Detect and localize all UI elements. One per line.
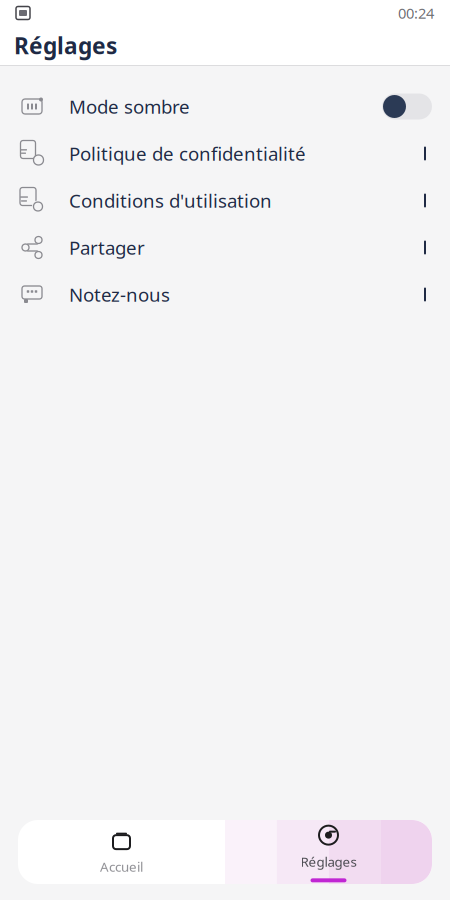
button[interactable]: Accueil — [18, 820, 225, 884]
staticText: Réglages — [300, 853, 356, 870]
button[interactable]: Mode sombre — [0, 83, 450, 130]
staticText: 00:24 — [398, 3, 434, 23]
staticText: Conditions d'utilisation — [69, 188, 272, 213]
button[interactable]: Politique de confidentialité — [0, 130, 450, 177]
staticText: Notez-nous — [69, 282, 170, 307]
staticText: Accueil — [100, 858, 143, 875]
staticText: Mode sombre — [69, 94, 190, 119]
button[interactable]: Partager — [0, 224, 450, 271]
staticText: Politique de confidentialité — [69, 141, 306, 166]
button[interactable]: Conditions d'utilisation — [0, 177, 450, 224]
button[interactable]: Notez-nous — [0, 271, 450, 318]
staticText: Réglages — [14, 30, 117, 60]
staticText: Partager — [69, 235, 145, 260]
button[interactable]: Réglages — [225, 820, 432, 884]
